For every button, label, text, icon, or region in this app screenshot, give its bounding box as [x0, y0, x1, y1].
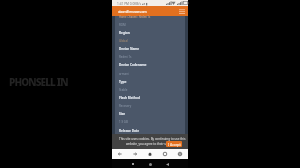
staticText: Device Codename: [119, 63, 147, 67]
button[interactable]: Home: [146, 160, 154, 168]
button[interactable]: This site uses cookies. By continuing to…: [112, 134, 188, 149]
staticText: Release Date: [119, 129, 140, 133]
button[interactable]: ROM: [119, 23, 195, 30]
staticText: ROM: [119, 23, 126, 27]
button[interactable]: Flash Method: [119, 96, 195, 103]
staticText: Redmi 1s: [119, 55, 132, 59]
button[interactable]: Recovery: [119, 104, 195, 111]
staticText: PHONSELL IN: [9, 75, 68, 89]
button[interactable]: Back: [163, 160, 171, 168]
button[interactable]: Back: [115, 149, 125, 159]
button[interactable]: Type: [119, 80, 195, 87]
button[interactable]: Global: [119, 39, 195, 46]
staticText: I Accept: [168, 142, 181, 147]
staticText: 1.9 GB: [119, 120, 128, 124]
button[interactable]: Tabs: [160, 149, 170, 159]
staticText: Flash Method: [119, 96, 140, 100]
staticText: armani: [119, 72, 129, 76]
staticText: Device Name: [119, 47, 140, 51]
button[interactable]: Menu: [178, 7, 186, 15]
button[interactable]: Recents: [129, 160, 137, 168]
staticText: Stable: [119, 88, 128, 92]
staticText: 1:41 PM 0.0KB/s ▴▾ ▮: [117, 2, 148, 6]
button[interactable]: Profile: [175, 149, 185, 159]
button[interactable]: 1.9 GB: [119, 120, 195, 127]
button[interactable]: Forward: [130, 149, 140, 159]
button[interactable]: Device Name: [119, 47, 195, 54]
staticText: website, you agree to their use.: [126, 142, 171, 146]
staticText: Size: [119, 112, 126, 116]
button[interactable]: I Accept: [166, 141, 182, 147]
button[interactable]: armani: [119, 72, 195, 79]
staticText: Home › Xiaomi › Redmi 1s: [119, 15, 151, 19]
staticText: This site uses cookies. By continuing to…: [119, 137, 186, 141]
staticText: xiaomifirmware.com: [118, 9, 147, 14]
button[interactable]: Device Codename: [119, 63, 195, 70]
staticText: Recovery: [119, 104, 132, 108]
staticText: Type: [119, 80, 127, 84]
button[interactable]: Stable: [119, 88, 195, 95]
button[interactable]: Release Date: [119, 129, 195, 136]
button[interactable]: Region: [119, 31, 195, 38]
button[interactable]: Redmi 1s: [119, 55, 195, 62]
staticText: Region: [119, 31, 130, 35]
button[interactable]: Size: [119, 112, 195, 119]
button[interactable]: xiaomifirmware.com: [112, 6, 188, 16]
button[interactable]: Home: [145, 149, 155, 159]
staticText: Global: [119, 39, 128, 43]
